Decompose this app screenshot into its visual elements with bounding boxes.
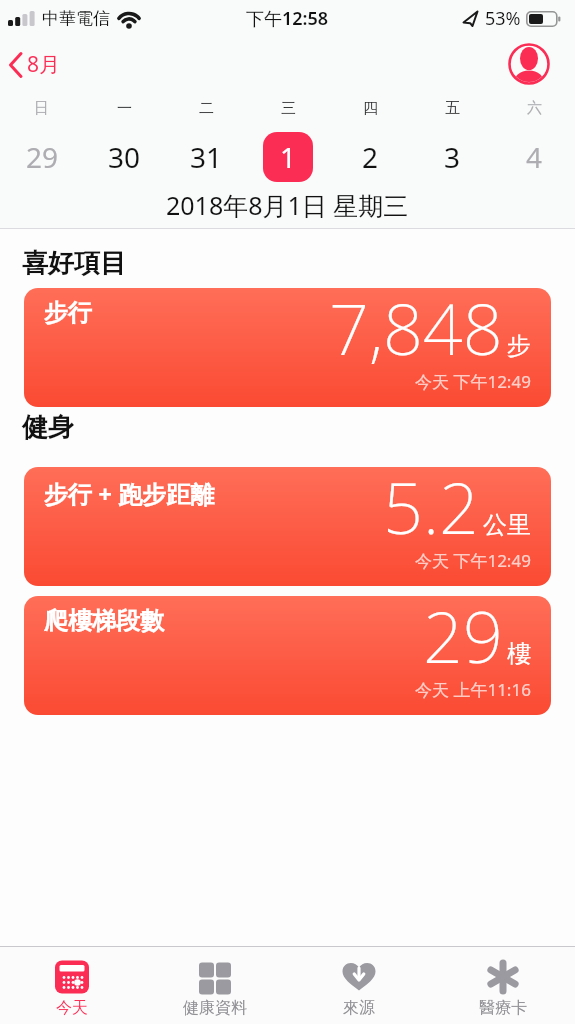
staticText: 樓 bbox=[507, 639, 531, 669]
staticText: 來源 bbox=[343, 998, 375, 1018]
staticText: 健康資料 bbox=[183, 998, 247, 1018]
staticText: 公里 bbox=[483, 510, 531, 540]
button[interactable] bbox=[508, 43, 550, 85]
button[interactable]: 3 bbox=[427, 132, 477, 182]
staticText: 今天 下午12:49 bbox=[415, 549, 531, 572]
staticText: 二 bbox=[199, 99, 214, 118]
button[interactable]: 29 bbox=[17, 132, 67, 182]
staticText: 今天 bbox=[56, 998, 88, 1018]
button[interactable]: 30 bbox=[99, 132, 149, 182]
staticText: 今天 下午12:49 bbox=[415, 370, 531, 393]
button[interactable]: 步行 + 跑步距離 bbox=[24, 467, 551, 586]
staticText: 2 bbox=[362, 138, 379, 176]
staticText: 29 bbox=[26, 138, 59, 176]
button[interactable]: 健康資料 bbox=[143, 947, 287, 1024]
staticText: 日 bbox=[34, 99, 49, 118]
button[interactable]: 來源 bbox=[287, 947, 431, 1024]
button[interactable]: 8月 bbox=[8, 50, 61, 79]
staticText: 爬樓梯段數 bbox=[44, 606, 164, 636]
button[interactable]: 1 bbox=[263, 132, 313, 182]
staticText: 5.2 bbox=[383, 467, 479, 554]
staticText: 步行 bbox=[44, 298, 92, 328]
staticText: 31 bbox=[190, 138, 223, 176]
staticText: 四 bbox=[363, 99, 378, 118]
staticText: 中華電信 bbox=[42, 8, 110, 29]
button[interactable]: 今天 bbox=[0, 947, 143, 1024]
staticText: 三 bbox=[281, 99, 296, 118]
staticText: 醫療卡 bbox=[479, 998, 527, 1018]
staticText: 4 bbox=[526, 138, 543, 176]
staticText: 1 bbox=[280, 138, 297, 176]
staticText: 今天 上午11:16 bbox=[415, 678, 531, 701]
staticText: 29 bbox=[423, 596, 503, 683]
button[interactable]: 醫療卡 bbox=[431, 947, 575, 1024]
staticText: 30 bbox=[108, 138, 141, 176]
staticText: 五 bbox=[445, 99, 460, 118]
staticText: 53% bbox=[485, 6, 521, 31]
staticText: 六 bbox=[527, 99, 542, 118]
staticText: 8月 bbox=[27, 50, 61, 79]
staticText: 下午12:58 bbox=[246, 6, 329, 31]
staticText: 2018年8月1日 星期三 bbox=[166, 188, 409, 222]
staticText: 健身 bbox=[22, 411, 74, 444]
button[interactable]: 2 bbox=[345, 132, 395, 182]
staticText: 一 bbox=[117, 99, 132, 118]
staticText: 喜好項目 bbox=[22, 247, 126, 280]
staticText: 步行 + 跑步距離 bbox=[44, 477, 215, 510]
button[interactable]: 31 bbox=[181, 132, 231, 182]
staticText: 步 bbox=[507, 331, 531, 361]
staticText: 3 bbox=[444, 138, 461, 176]
button[interactable]: 步行 bbox=[24, 288, 551, 407]
button[interactable]: 爬樓梯段數 bbox=[24, 596, 551, 715]
staticText: 7,848 bbox=[329, 288, 503, 375]
button[interactable]: 4 bbox=[509, 132, 559, 182]
